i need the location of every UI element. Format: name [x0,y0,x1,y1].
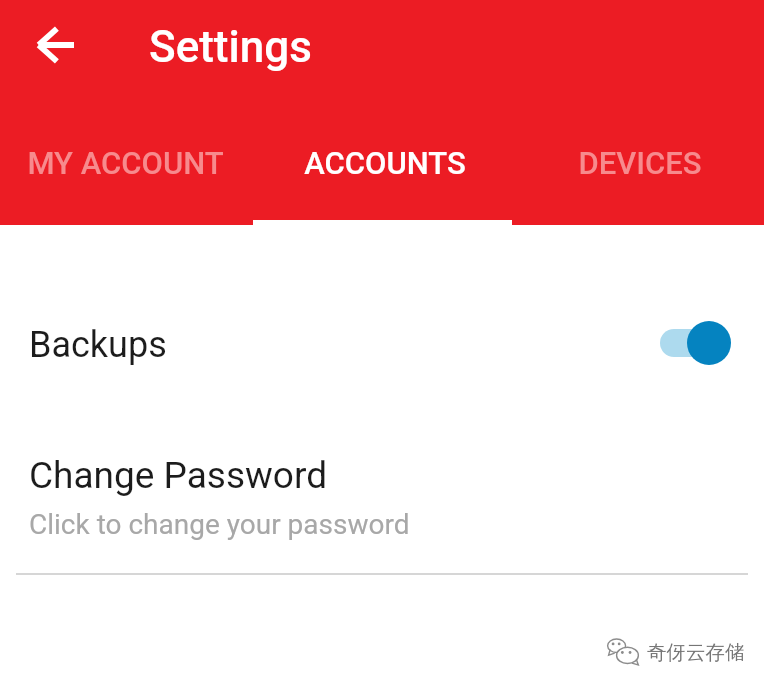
button[interactable]: Change Password [0,400,764,573]
staticText: DEVICES [578,145,702,181]
staticText: 奇伢云存储 [647,640,745,665]
staticText: Click to change your password [29,508,410,541]
staticText: Change Password [29,454,328,497]
staticText: MY ACCOUNT [27,145,224,181]
button[interactable]: DEVICES [514,108,760,218]
button[interactable]: Backups toggle [660,321,731,365]
button[interactable]: Back [19,11,91,83]
button[interactable]: ACCOUNTS [255,108,514,218]
staticText: ACCOUNTS [304,145,466,181]
button[interactable]: MY ACCOUNT [0,108,255,218]
staticText: Backups [29,324,167,366]
button[interactable]: Backups [0,225,764,400]
staticText: Settings [149,21,312,73]
